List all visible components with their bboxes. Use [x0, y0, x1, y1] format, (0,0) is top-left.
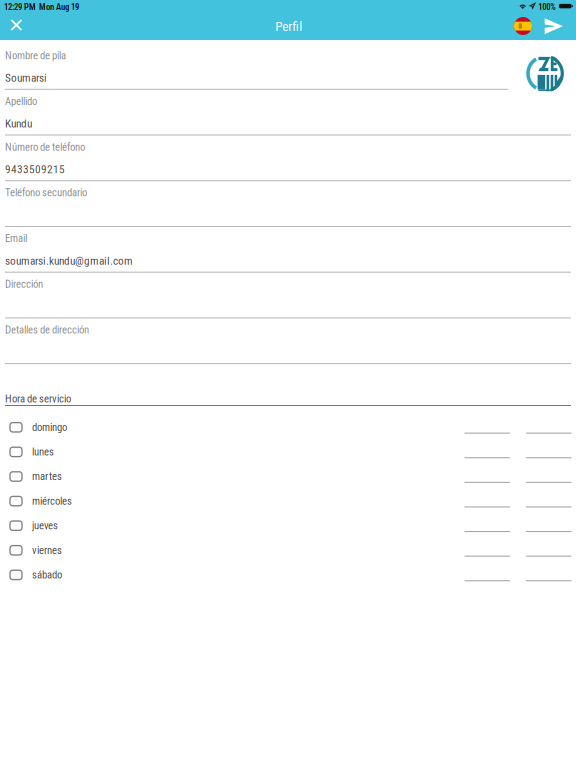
staticText: lunes [32, 446, 54, 458]
staticText: sábado [32, 569, 62, 581]
button[interactable]: Apellido [5, 91, 571, 137]
staticText: soumarsi.kundu@gmail.com [5, 254, 133, 267]
button[interactable]: Close [0, 13, 33, 40]
button[interactable]: miércoles [0, 489, 576, 514]
staticText: viernes [32, 544, 62, 556]
staticText: Detalles de dirección [5, 324, 89, 336]
staticText: Teléfono secundario [5, 186, 87, 199]
button[interactable]: Language [508, 13, 536, 40]
staticText: 9433509215 [5, 163, 65, 176]
staticText: Nombre de pila [5, 49, 66, 62]
staticText: Perfil [275, 19, 302, 34]
staticText: Kundu [5, 117, 32, 130]
button[interactable]: sábado [0, 563, 576, 588]
button[interactable]: Nombre de pila [5, 45, 571, 91]
staticText: 12:29 PM [4, 2, 36, 12]
staticText: 100% [538, 2, 556, 12]
button[interactable]: Teléfono secundario [5, 182, 571, 228]
button[interactable]: martes [0, 465, 576, 489]
staticText: jueves [32, 519, 58, 532]
button[interactable]: Email [5, 228, 571, 274]
staticText: domingo [32, 421, 67, 433]
button[interactable]: Número de teléfono [5, 137, 571, 182]
button[interactable]: viernes [0, 538, 576, 563]
staticText: Número de teléfono [5, 141, 85, 153]
staticText: Mon Aug 19 [39, 2, 79, 12]
button[interactable]: lunes [0, 440, 576, 465]
button[interactable]: Send [536, 13, 570, 40]
staticText: miércoles [32, 495, 72, 507]
button[interactable]: jueves [0, 514, 576, 538]
staticText: Hora de servicio [5, 392, 71, 405]
button[interactable]: domingo [0, 415, 576, 440]
button[interactable]: Dirección [5, 274, 571, 320]
staticText: Apellido [5, 95, 37, 107]
staticText: Soumarsi [5, 71, 47, 85]
button[interactable]: Perfil [229, 13, 349, 40]
staticText: Dirección [5, 278, 43, 290]
staticText: Email [5, 232, 27, 245]
staticText: martes [32, 470, 62, 483]
button[interactable]: Detalles de dirección [5, 320, 571, 365]
